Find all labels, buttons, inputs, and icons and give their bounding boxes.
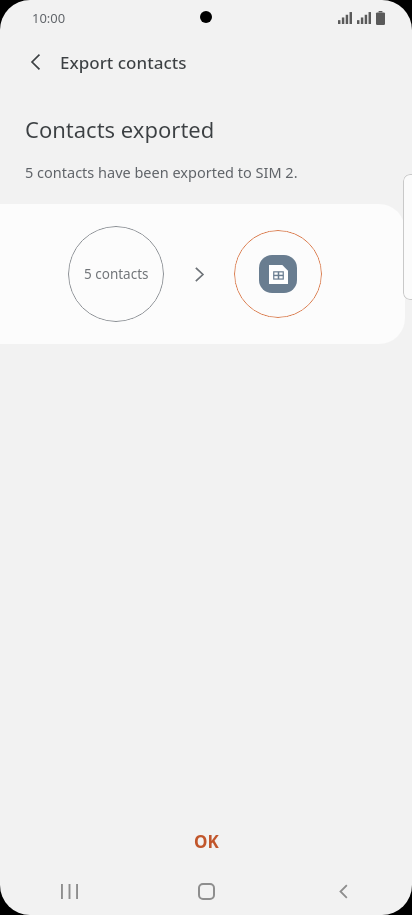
- staticText: 5 contacts have been exported to SIM 2.: [25, 162, 298, 182]
- button[interactable]: 5 contacts: [68, 226, 164, 322]
- button[interactable]: Home: [138, 867, 275, 915]
- staticText: 5 contacts: [84, 265, 149, 283]
- staticText: Contacts exported: [25, 114, 215, 144]
- button[interactable]: Back: [275, 867, 412, 915]
- button[interactable]: Recent apps: [0, 867, 138, 915]
- staticText: 10:00: [32, 9, 66, 27]
- button[interactable]: Back: [14, 40, 58, 84]
- button[interactable]: SIM 2: [234, 230, 322, 318]
- staticText: Export contacts: [60, 51, 187, 74]
- staticText: OK: [194, 830, 219, 853]
- button[interactable]: OK: [0, 817, 412, 865]
